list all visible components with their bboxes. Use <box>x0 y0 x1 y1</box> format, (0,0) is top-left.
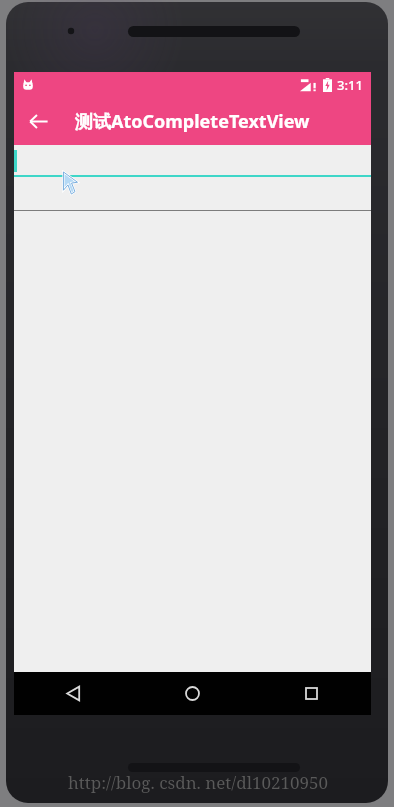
staticText: 3:11 <box>337 76 363 94</box>
button[interactable]: Back <box>14 672 133 715</box>
button[interactable] <box>14 145 371 191</box>
staticText: http://blog. csdn. net/dl10210950 <box>68 771 328 794</box>
button[interactable]: Home <box>133 672 252 715</box>
button[interactable]: Back <box>14 97 62 145</box>
staticText: 测试AtoCompleteTextView <box>75 109 310 134</box>
button[interactable]: Recent apps <box>252 672 371 715</box>
